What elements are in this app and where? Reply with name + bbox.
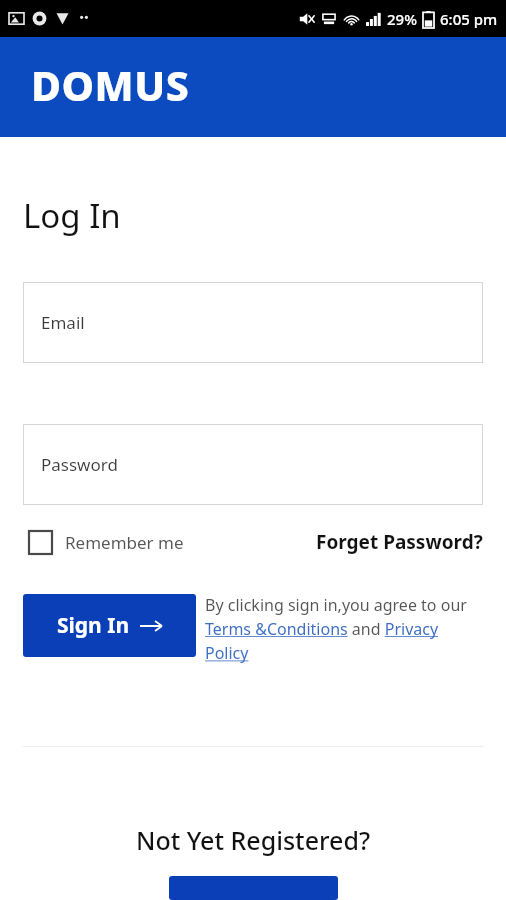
button[interactable]: By clicking sign in,you agree to our Ter… — [205, 594, 483, 664]
button[interactable]: Remember me — [23, 527, 184, 558]
button[interactable]: Email — [23, 282, 483, 363]
staticText: Log In — [23, 193, 121, 238]
staticText: By clicking sign in,you agree to our Ter… — [205, 594, 483, 664]
button[interactable]: Sign In — [23, 594, 196, 657]
staticText: Sign In — [57, 611, 130, 640]
staticText: Remember me — [65, 531, 184, 554]
button[interactable]: Password — [23, 424, 483, 505]
staticText: Forget Password? — [316, 529, 483, 555]
staticText: Email — [41, 311, 85, 334]
staticText: DOMUS — [31, 57, 190, 113]
button[interactable]: Register — [169, 876, 338, 900]
staticText: Password — [41, 453, 118, 476]
staticText: 29% — [387, 9, 417, 29]
staticText: Not Yet Registered? — [136, 823, 371, 857]
button[interactable]: Forget Password? — [316, 525, 483, 559]
staticText: 6:05 pm — [440, 9, 498, 29]
